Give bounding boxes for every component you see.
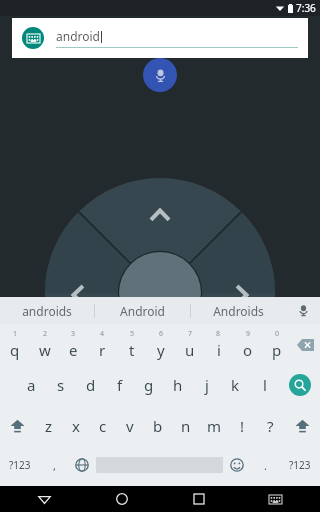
button[interactable]: Home xyxy=(83,486,160,512)
button[interactable]: ?123 xyxy=(279,446,320,484)
button[interactable]: Back xyxy=(6,486,83,512)
staticText: l xyxy=(263,375,267,395)
staticText: v xyxy=(126,416,134,436)
staticText: Androids xyxy=(213,303,264,319)
button[interactable]: Keyboard input method xyxy=(12,18,308,58)
staticText: y xyxy=(157,340,165,360)
staticText: q xyxy=(10,340,20,360)
staticText: 5 xyxy=(130,329,135,339)
button[interactable]: z xyxy=(35,405,62,446)
staticText: 4 xyxy=(100,329,105,339)
button[interactable]: Voice input xyxy=(286,297,320,324)
staticText: Android xyxy=(120,303,165,319)
button[interactable]: j xyxy=(192,365,221,405)
button[interactable]: d xyxy=(76,365,105,405)
button[interactable]: m xyxy=(200,405,228,446)
button[interactable]: Android xyxy=(95,297,190,324)
button[interactable]: Androids xyxy=(191,297,286,324)
staticText: 8 xyxy=(216,329,221,339)
button[interactable]: Backspace xyxy=(291,324,320,365)
staticText: m xyxy=(207,416,222,436)
button[interactable]: Emoji xyxy=(223,446,251,484)
staticText: 0 xyxy=(275,329,280,339)
button[interactable]: Keyboard input method xyxy=(22,27,44,49)
button[interactable]: ?123 xyxy=(0,446,40,484)
button[interactable]: 9 xyxy=(233,324,262,365)
button[interactable]: Shift xyxy=(0,405,35,446)
staticText: 3 xyxy=(71,329,76,339)
staticText: p xyxy=(272,340,282,360)
staticText: r xyxy=(99,340,106,360)
staticText: i xyxy=(217,340,221,360)
button[interactable]: v xyxy=(116,405,144,446)
staticText: ! xyxy=(240,416,245,436)
button[interactable]: Shift xyxy=(284,405,320,446)
staticText: ? xyxy=(267,416,274,436)
staticText: 7:36 xyxy=(296,1,316,15)
button[interactable]: b xyxy=(144,405,172,446)
button[interactable]: ? xyxy=(256,405,284,446)
staticText: 6 xyxy=(159,329,164,339)
staticText: ?123 xyxy=(9,458,31,472)
staticText: z xyxy=(45,416,53,436)
staticText: b xyxy=(153,416,163,436)
button[interactable]: 8 xyxy=(204,324,233,365)
button[interactable]: k xyxy=(221,365,250,405)
button[interactable]: . xyxy=(251,446,279,484)
button[interactable]: 2 xyxy=(30,324,59,365)
button[interactable]: ! xyxy=(228,405,256,446)
button[interactable]: androids xyxy=(0,297,94,324)
staticText: c xyxy=(99,416,107,436)
button[interactable]: , xyxy=(40,446,68,484)
button[interactable]: Switch keyboard xyxy=(237,486,314,512)
staticText: 9 xyxy=(246,329,251,339)
staticText: n xyxy=(181,416,191,436)
staticText: 1 xyxy=(13,329,18,339)
staticText: . xyxy=(264,458,267,473)
button[interactable]: g xyxy=(134,365,163,405)
staticText: 2 xyxy=(43,329,48,339)
button[interactable]: c xyxy=(89,405,116,446)
staticText: f xyxy=(117,375,123,395)
staticText: android xyxy=(56,28,100,44)
button[interactable]: n xyxy=(172,405,200,446)
staticText: a xyxy=(27,375,36,395)
button[interactable]: Recent apps xyxy=(160,486,237,512)
staticText: j xyxy=(205,375,209,395)
button[interactable]: x xyxy=(62,405,89,446)
staticText: k xyxy=(231,375,240,395)
button[interactable]: 5 xyxy=(117,324,146,365)
staticText: x xyxy=(72,416,80,436)
staticText: e xyxy=(69,340,78,360)
button[interactable]: Directional pad xyxy=(0,100,320,400)
staticText: h xyxy=(173,375,183,395)
button[interactable]: 3 xyxy=(59,324,88,365)
staticText: g xyxy=(144,375,154,395)
staticText: , xyxy=(53,458,56,473)
staticText: d xyxy=(86,375,96,395)
staticText: o xyxy=(243,340,253,360)
button[interactable]: h xyxy=(163,365,192,405)
button[interactable]: f xyxy=(105,365,134,405)
staticText: u xyxy=(185,340,195,360)
button[interactable]: a xyxy=(16,365,46,405)
staticText: s xyxy=(57,375,65,395)
staticText: androids xyxy=(22,303,72,319)
button[interactable]: 7 xyxy=(175,324,204,365)
button[interactable]: 6 xyxy=(146,324,175,365)
staticText: t xyxy=(129,340,135,360)
staticText: 7 xyxy=(188,329,193,339)
button[interactable]: 1 xyxy=(0,324,30,365)
button[interactable]: Search xyxy=(279,365,320,405)
button[interactable]: Voice search xyxy=(143,58,177,92)
staticText: w xyxy=(39,340,51,360)
button[interactable]: s xyxy=(46,365,76,405)
button[interactable]: l xyxy=(250,365,279,405)
button[interactable]: 4 xyxy=(88,324,117,365)
button[interactable]: 0 xyxy=(262,324,291,365)
button[interactable]: Change language xyxy=(68,446,96,484)
staticText: ?123 xyxy=(289,458,311,472)
